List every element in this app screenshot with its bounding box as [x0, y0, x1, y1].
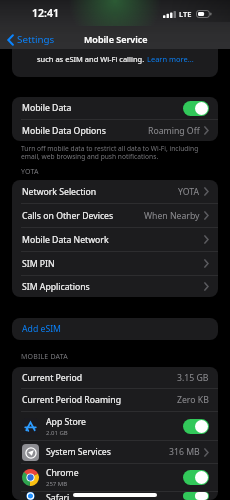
staticText: LTE — [179, 9, 192, 19]
staticText: Turn off mobile data to restrict all dat… — [21, 144, 205, 161]
staticText: System Services — [46, 446, 111, 458]
button[interactable]: Mobile Data Network — [12, 228, 218, 251]
button[interactable]: Network Selection — [12, 180, 218, 203]
staticText: 3.15 GB — [177, 372, 209, 384]
staticText: Current Period — [22, 372, 83, 384]
button[interactable]: SIM PIN — [12, 252, 218, 275]
staticText: Current Period Roaming — [22, 394, 121, 406]
staticText: When Nearby — [144, 210, 200, 222]
button[interactable]: Calls on Other Devices — [12, 204, 218, 227]
button[interactable]: Settings — [0, 31, 63, 48]
staticText: such as eSIM and Wi-Fi calling. — [37, 54, 147, 64]
staticText: Learn more... — [147, 54, 194, 64]
staticText: Calls on Other Devices — [22, 210, 114, 222]
staticText: 316 MB — [169, 446, 200, 458]
staticText: Safari — [46, 492, 70, 500]
button[interactable]: Mobile Data — [12, 97, 218, 119]
staticText: App Store — [46, 416, 86, 428]
staticText: Mobile Data Network — [22, 234, 109, 246]
staticText: Mobile Data Options — [22, 125, 106, 137]
button[interactable]: Safari — [12, 492, 218, 500]
staticText: MOBILE DATA — [21, 352, 68, 362]
staticText: YOTA — [178, 186, 200, 198]
button[interactable]: SIM Applications — [12, 276, 218, 297]
button[interactable]: Add eSIM — [12, 318, 218, 340]
staticText: Add eSIM — [22, 323, 61, 335]
staticText: SIM PIN — [22, 258, 55, 270]
staticText: 12:41 — [32, 6, 59, 20]
button[interactable]: Toggle — [183, 419, 209, 434]
staticText: Mobile Data — [22, 102, 72, 114]
button[interactable]: such as eSIM and Wi-Fi calling. — [12, 49, 218, 77]
button[interactable]: App Store — [12, 412, 218, 440]
staticText: Mobile Service — [84, 33, 148, 45]
button[interactable]: Mobile Data Options — [12, 120, 218, 141]
staticText: Network Selection — [22, 186, 97, 198]
button[interactable]: Toggle — [183, 470, 209, 485]
staticText: 257 MB — [46, 480, 68, 488]
staticText: Chrome — [46, 467, 79, 479]
button[interactable]: Toggle — [183, 492, 209, 500]
staticText: Roaming Off — [148, 125, 200, 137]
staticText: Zero KB — [177, 394, 209, 406]
staticText: YOTA — [21, 167, 39, 177]
button[interactable]: Current Period Roaming — [12, 389, 218, 411]
staticText: Settings — [17, 33, 55, 46]
button[interactable]: Chrome — [12, 464, 218, 491]
staticText: 2.01 GB — [46, 429, 68, 437]
staticText: SIM Applications — [22, 281, 90, 293]
button[interactable]: Toggle — [183, 101, 209, 116]
button[interactable]: System Services — [12, 441, 218, 463]
button[interactable]: Current Period — [12, 367, 218, 388]
